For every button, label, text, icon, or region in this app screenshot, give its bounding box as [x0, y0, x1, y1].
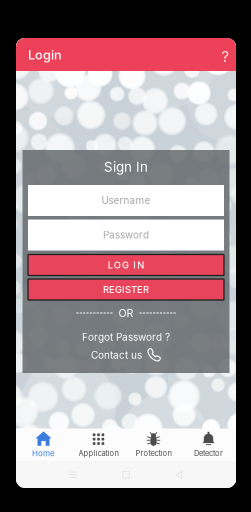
button[interactable]: Detector: [181, 429, 236, 461]
button[interactable]: Contact us: [61, 348, 191, 362]
staticText: Sign In: [104, 159, 148, 175]
button[interactable]: Home: [114, 466, 138, 484]
button[interactable]: LOG IN: [28, 254, 224, 275]
staticText: Login: [28, 47, 62, 63]
button[interactable]: Recents: [61, 466, 85, 484]
staticText: Protection: [135, 449, 171, 458]
staticText: REGISTER: [103, 284, 149, 295]
staticText: Home: [32, 448, 55, 458]
staticText: LOG IN: [108, 259, 144, 271]
button[interactable]: Back: [167, 466, 191, 484]
staticText: Contact us: [91, 349, 142, 361]
button[interactable]: Application: [71, 429, 126, 461]
staticText: Forgot Password ?: [82, 331, 170, 343]
staticText: Detector: [194, 449, 223, 458]
button[interactable]: REGISTER: [28, 279, 224, 300]
button[interactable]: Forgot Password ?: [61, 330, 191, 344]
staticText: Application: [78, 449, 118, 458]
staticText: Password: [103, 229, 149, 241]
button[interactable]: Home: [16, 429, 71, 461]
staticText: Username: [101, 194, 150, 206]
staticText: ?: [221, 48, 228, 65]
button[interactable]: Protection: [126, 429, 181, 461]
staticText: OR: [118, 306, 133, 319]
button[interactable]: Help: [215, 47, 235, 67]
